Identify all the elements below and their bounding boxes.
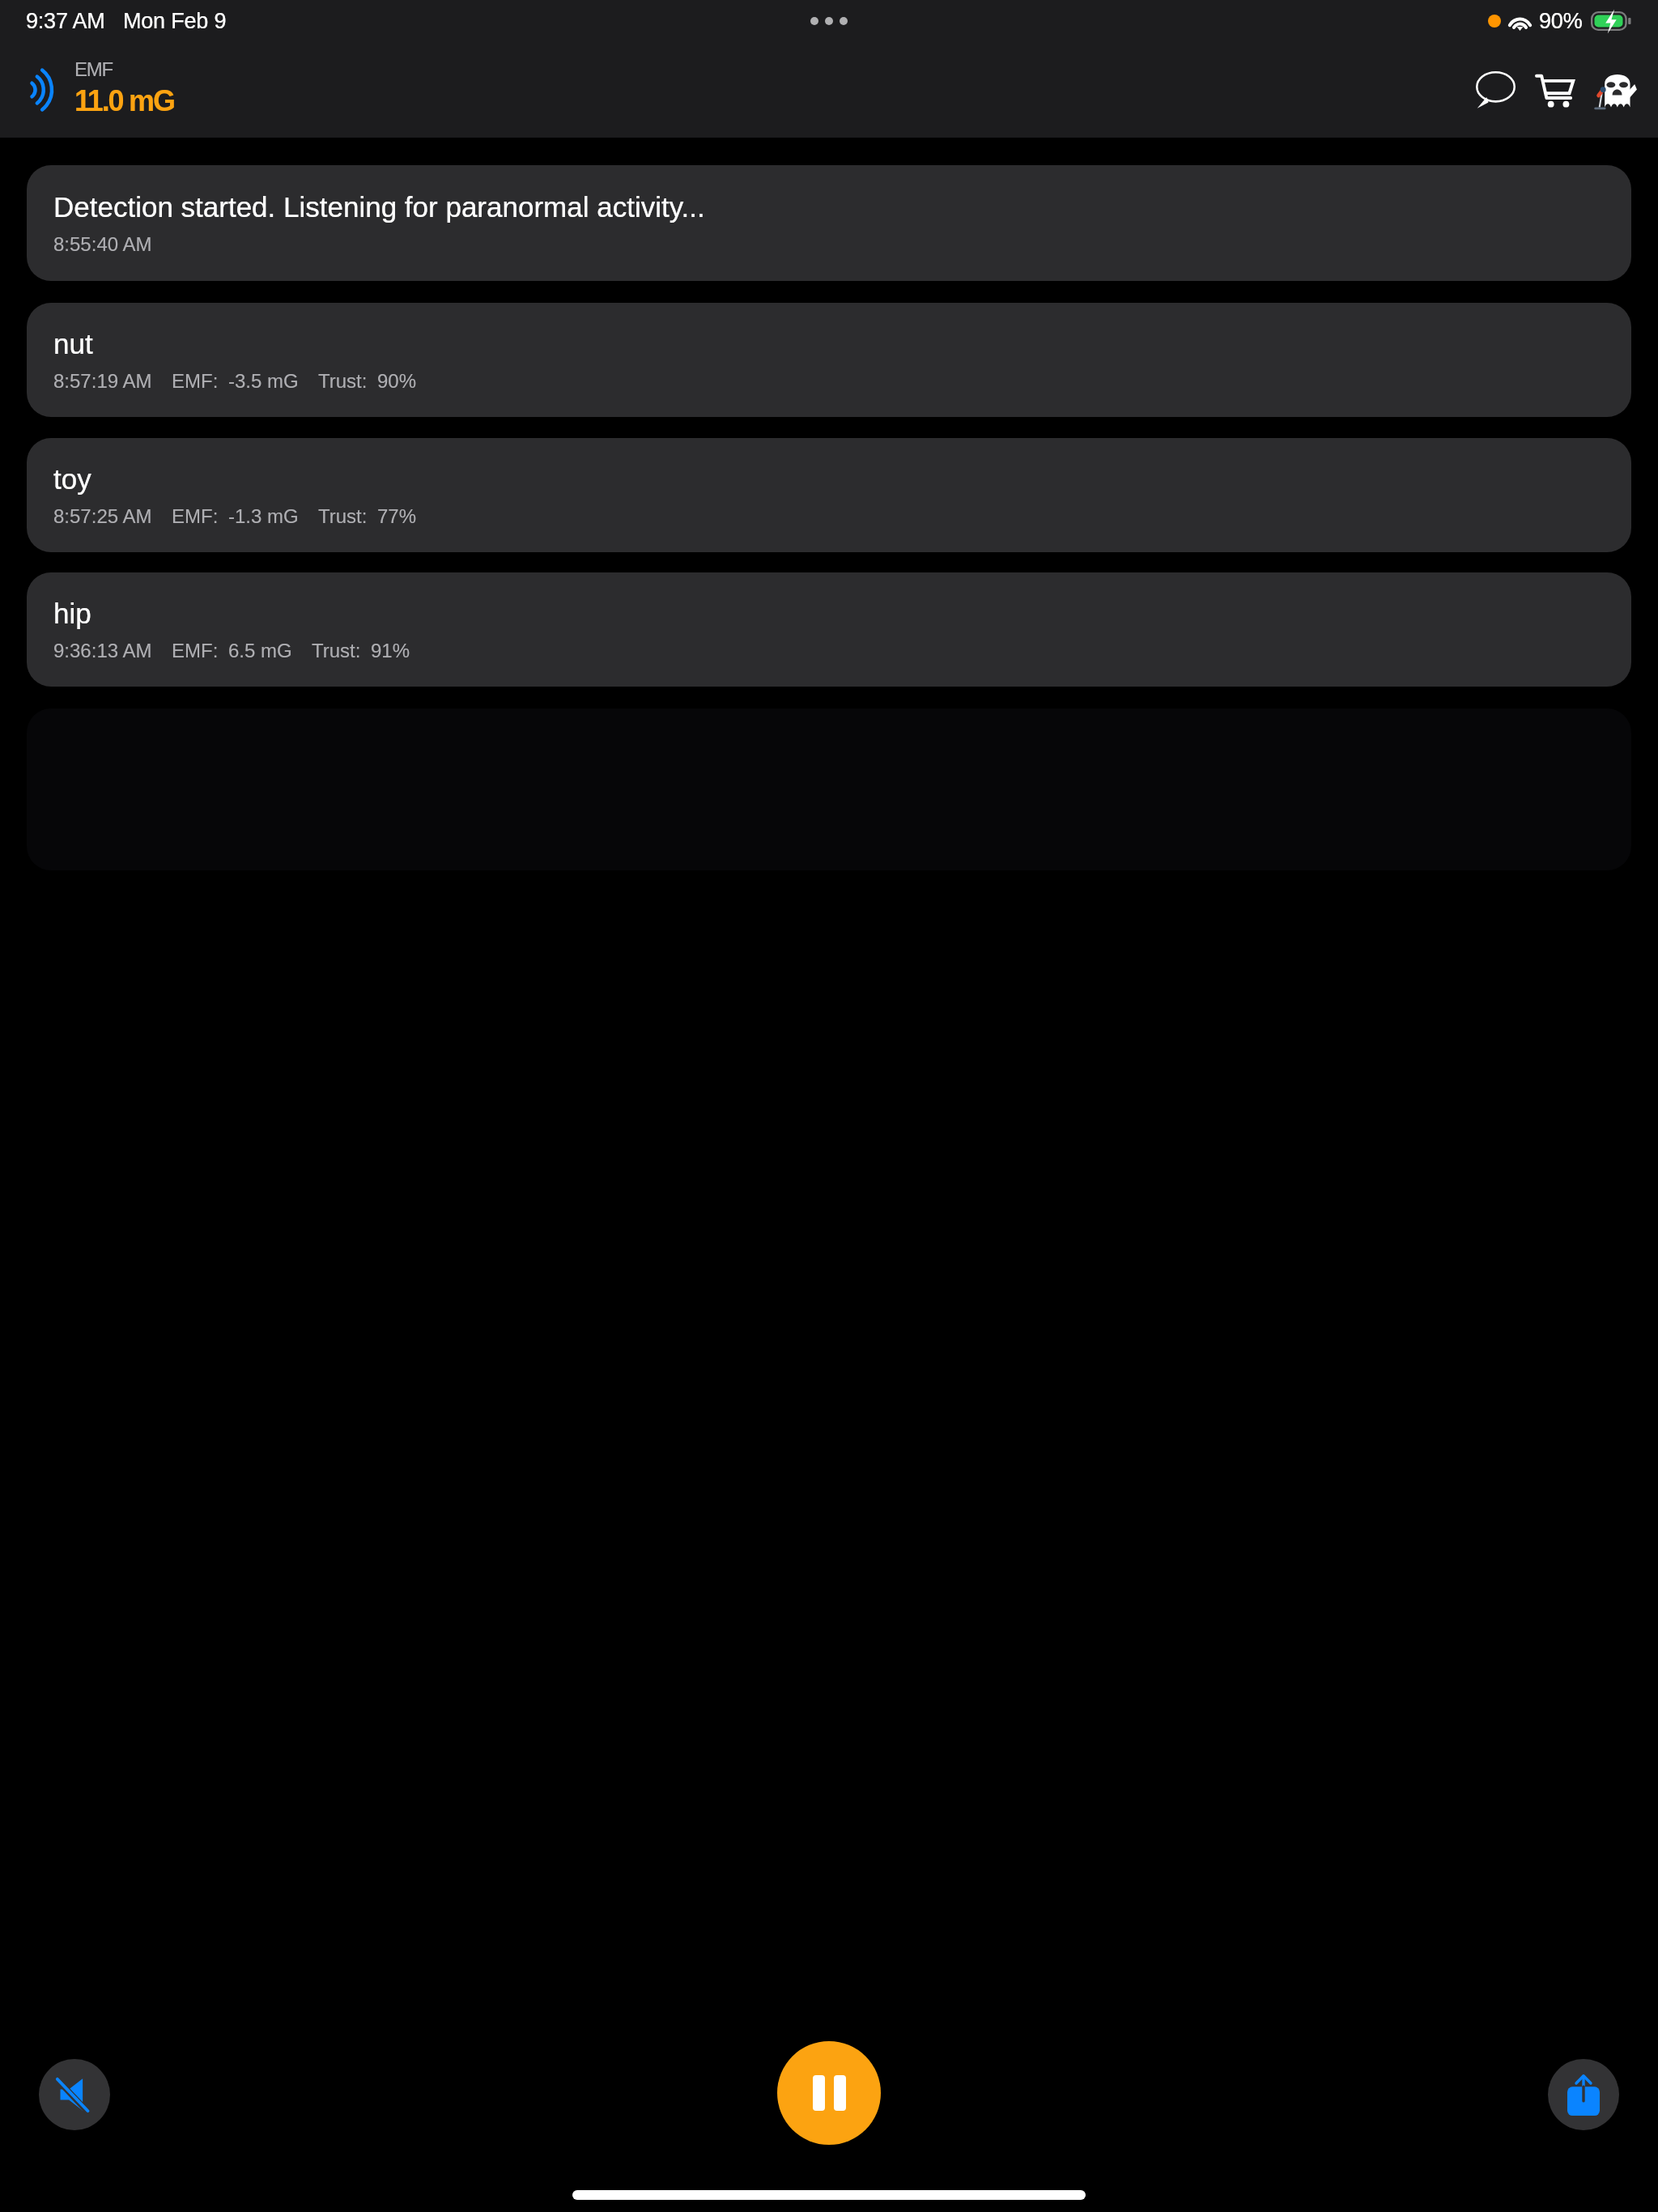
button[interactable]: Ghost hunt bbox=[1584, 59, 1646, 121]
staticText: 90% bbox=[1539, 9, 1583, 33]
staticText: 8:57:25 AM bbox=[53, 505, 152, 527]
staticText: 77% bbox=[377, 505, 417, 527]
staticText: Mon Feb 9 bbox=[123, 9, 227, 33]
button[interactable]: Detection started. Listening for paranor… bbox=[27, 165, 1631, 281]
button[interactable]: Messages bbox=[1466, 61, 1524, 119]
staticText: 91% bbox=[371, 640, 410, 661]
staticText: 9:37 AM bbox=[26, 9, 105, 33]
staticText: Trust: bbox=[318, 370, 368, 392]
staticText: 6.5 mG bbox=[228, 640, 292, 661]
staticText: EMF: bbox=[172, 370, 219, 392]
button[interactable]: Pause detection bbox=[777, 2041, 881, 2145]
staticText: Trust: bbox=[318, 505, 368, 527]
staticText: EMF bbox=[74, 58, 113, 80]
staticText: toy bbox=[53, 463, 91, 495]
staticText: 90% bbox=[377, 370, 417, 392]
button[interactable]: Share bbox=[1548, 2059, 1619, 2130]
button[interactable]: hip bbox=[27, 572, 1631, 687]
staticText: Trust: bbox=[312, 640, 361, 661]
staticText: 8:57:19 AM bbox=[53, 370, 152, 392]
staticText: nut bbox=[53, 328, 93, 359]
staticText: Detection started. Listening for paranor… bbox=[53, 191, 705, 223]
button[interactable]: nut bbox=[27, 303, 1631, 417]
staticText: EMF: bbox=[172, 505, 219, 527]
staticText: -3.5 mG bbox=[228, 370, 299, 392]
button[interactable]: toy bbox=[27, 438, 1631, 552]
button[interactable]: Mute bbox=[39, 2059, 110, 2130]
button[interactable]: Store bbox=[1524, 60, 1584, 120]
staticText: 11.0 mG bbox=[74, 84, 174, 117]
staticText: EMF: bbox=[172, 640, 219, 661]
staticText: 8:55:40 AM bbox=[53, 233, 152, 255]
staticText: -1.3 mG bbox=[228, 505, 299, 527]
staticText: 9:36:13 AM bbox=[53, 640, 152, 661]
staticText: hip bbox=[53, 598, 91, 629]
